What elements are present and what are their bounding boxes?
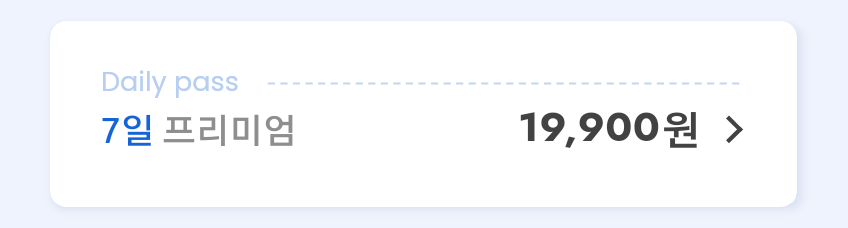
staticText: 7일 프리미엄 (101, 116, 297, 150)
button[interactable]: View 7-day premium daily pass details (711, 104, 757, 150)
staticText: Daily pass (101, 63, 239, 101)
staticText: 19,900 (518, 97, 661, 156)
staticText: 원 (661, 114, 700, 153)
button[interactable]: Daily pass (50, 21, 797, 207)
